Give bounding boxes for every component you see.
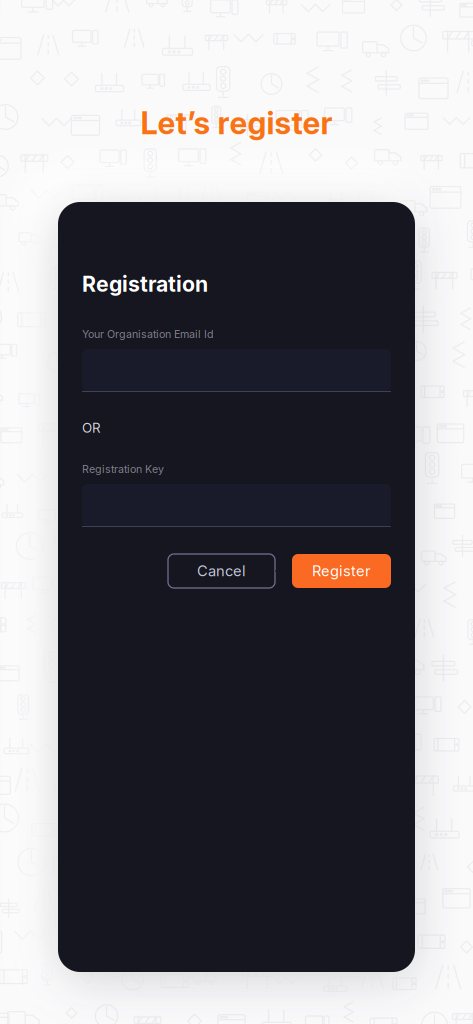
button[interactable]: Register (292, 554, 391, 588)
staticText: Registration Key (82, 462, 164, 475)
button[interactable]: Cancel (168, 554, 275, 588)
staticText: Register (312, 562, 371, 580)
staticText: Registration (82, 271, 208, 297)
staticText: OR (82, 420, 101, 436)
staticText: Cancel (197, 562, 246, 580)
staticText: Let’s register (140, 104, 332, 141)
staticText: Your Organisation Email Id (82, 327, 214, 340)
